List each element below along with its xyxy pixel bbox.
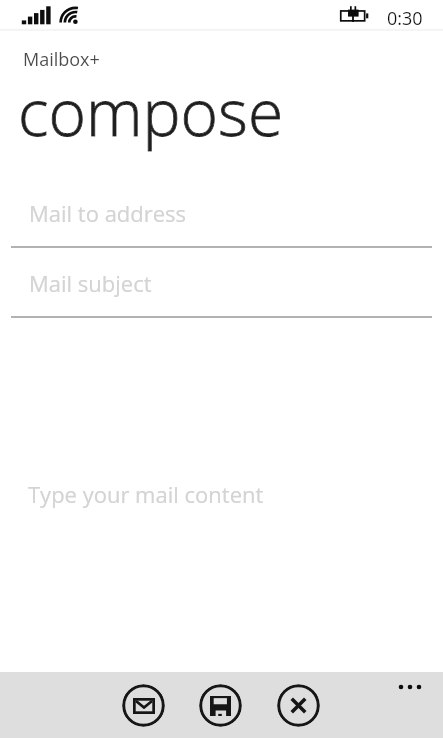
button[interactable]: Save draft [199,684,242,727]
staticText: Mail to address [29,198,187,228]
button[interactable]: Cancel [277,684,320,727]
staticText: compose [18,68,284,155]
button[interactable]: More options [389,672,431,702]
button[interactable]: Send mail [122,684,165,727]
staticText: compose [18,68,284,155]
button[interactable]: Mail to address [0,186,443,248]
staticText: Mail subject [29,268,152,298]
staticText: Type your mail content [28,479,264,509]
staticText: Mailbox+ [23,47,100,72]
button[interactable]: Type your mail content [11,460,432,650]
staticText: 0:30 [387,6,423,31]
button[interactable]: Mail subject [0,256,443,318]
